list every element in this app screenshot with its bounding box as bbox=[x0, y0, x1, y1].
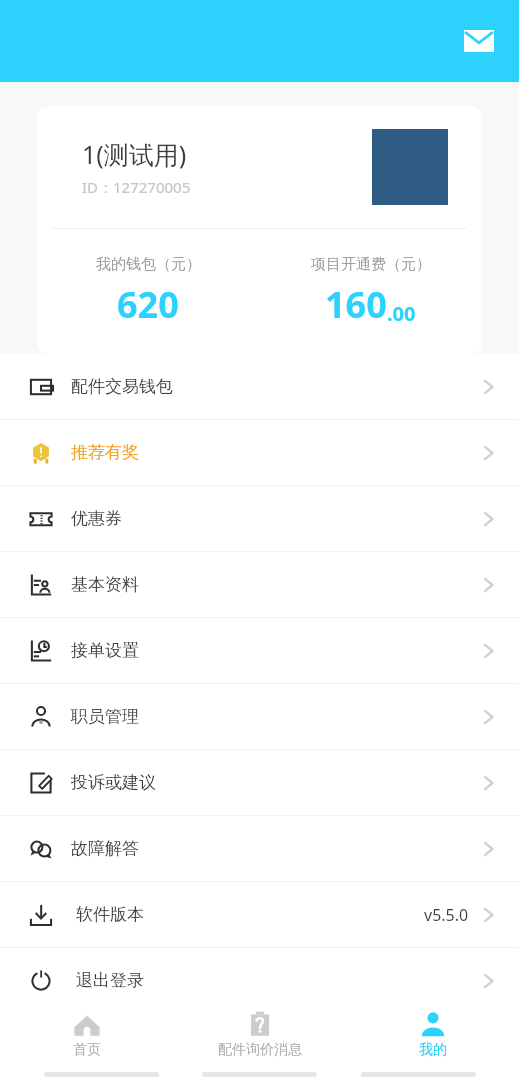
staticText: 职员管理 bbox=[71, 706, 139, 727]
button[interactable]: 推荐有奖 bbox=[0, 420, 519, 485]
staticText: 优惠券 bbox=[71, 508, 122, 529]
staticText: 接单设置 bbox=[71, 640, 139, 661]
button[interactable]: 接单设置 bbox=[0, 618, 519, 683]
staticText: 推荐有奖 bbox=[71, 442, 139, 463]
button[interactable]: 投诉或建议 bbox=[0, 750, 519, 815]
button[interactable]: 职员管理 bbox=[0, 684, 519, 749]
button[interactable]: 退出登录 bbox=[0, 948, 519, 1013]
staticText: 投诉或建议 bbox=[71, 772, 156, 793]
staticText: v5.5.0 bbox=[424, 904, 469, 926]
staticText: 故障解答 bbox=[71, 838, 139, 859]
staticText: 我的钱包（元） bbox=[96, 255, 201, 274]
button[interactable]: 软件版本 bbox=[0, 882, 519, 947]
staticText: 620 bbox=[117, 280, 179, 329]
button[interactable]: 优惠券 bbox=[0, 486, 519, 551]
button[interactable]: 基本资料 bbox=[0, 552, 519, 617]
button[interactable]: 项目开通费（元） bbox=[259, 229, 482, 354]
staticText: 配件询价消息 bbox=[218, 1041, 302, 1059]
button[interactable]: 配件询价消息 bbox=[173, 1000, 346, 1068]
staticText: 首页 bbox=[73, 1041, 101, 1059]
button[interactable]: 我的 bbox=[346, 1000, 519, 1068]
button[interactable]: 首页 bbox=[0, 1000, 173, 1068]
staticText: 基本资料 bbox=[71, 574, 139, 595]
staticText: .00 bbox=[387, 300, 416, 327]
staticText: 项目开通费（元） bbox=[311, 255, 431, 274]
staticText: 我的 bbox=[419, 1041, 447, 1059]
staticText: 160 bbox=[325, 280, 387, 329]
staticText: 退出登录 bbox=[76, 970, 144, 991]
staticText: 软件版本 bbox=[76, 904, 144, 925]
button[interactable]: 故障解答 bbox=[0, 816, 519, 881]
button[interactable]: 我的钱包（元） bbox=[37, 229, 259, 354]
button[interactable]: Messages bbox=[455, 17, 503, 65]
staticText: 1(测试用) bbox=[82, 137, 187, 171]
button[interactable]: 配件交易钱包 bbox=[0, 354, 519, 419]
staticText: ID：127270005 bbox=[82, 177, 191, 197]
staticText: 配件交易钱包 bbox=[71, 376, 173, 397]
